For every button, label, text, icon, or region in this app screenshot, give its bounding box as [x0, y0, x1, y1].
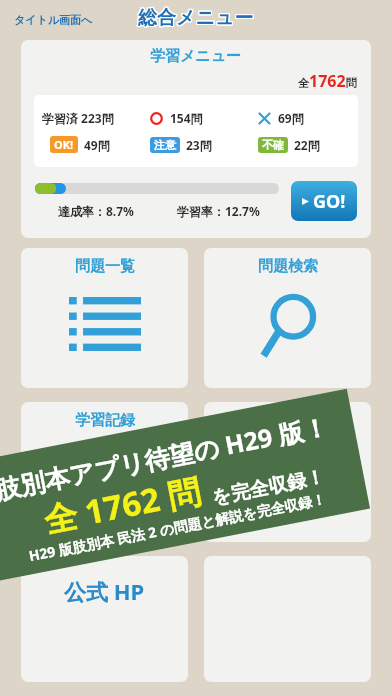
staticText: OK! — [54, 137, 74, 152]
button[interactable]: 情報その他 — [204, 402, 371, 542]
staticText: 全1762問 — [298, 70, 357, 92]
staticText: 公式 HP — [64, 576, 145, 606]
button[interactable]: タイトル画面へ — [10, 9, 97, 31]
staticText: 総合メニュー — [137, 6, 253, 30]
staticText: 総合メニュー — [138, 6, 254, 30]
staticText: 総合メニュー — [139, 7, 255, 31]
staticText: 問題検索 — [258, 257, 318, 276]
staticText: 学習記録 — [75, 411, 135, 430]
staticText: を完全収録！ — [210, 465, 327, 510]
staticText: 総合メニュー — [139, 6, 255, 30]
staticText: 学習済 223問 — [42, 110, 114, 126]
staticText: 全 1762 問 — [40, 468, 205, 542]
button[interactable]: GO! — [291, 181, 357, 221]
staticText: 23問 — [186, 137, 212, 153]
staticText: タイトル画面へ — [14, 13, 93, 27]
staticText: 情報その他 — [250, 411, 326, 430]
staticText: 22問 — [294, 137, 320, 153]
staticText: 49問 — [84, 137, 110, 153]
button[interactable]: 問題一覧 — [21, 248, 188, 388]
staticText: 総合メニュー — [138, 5, 254, 29]
button[interactable]: 学習記録 — [21, 402, 188, 542]
staticText: 総合メニュー — [138, 7, 254, 31]
staticText: GO! — [313, 189, 346, 214]
staticText: 総合メニュー — [137, 7, 253, 31]
button[interactable]: 問題検索 — [204, 248, 371, 388]
staticText: 学習メニュー — [150, 47, 242, 66]
staticText: 総合メニュー — [139, 5, 255, 29]
button[interactable]: 公式 HP — [21, 556, 188, 682]
staticText: 肢別本アプリ待望の H29 版！ — [0, 408, 332, 506]
staticText: 69問 — [278, 110, 304, 126]
staticText: 問題一覧 — [75, 257, 135, 276]
staticText: 注意 — [154, 138, 176, 152]
staticText: 達成率：8.7% — [58, 203, 134, 219]
staticText: 154問 — [170, 110, 203, 126]
staticText: H29 版肢別本 民法 2 の問題と解説を完全収録！ — [27, 489, 328, 565]
staticText: 学習率：12.7% — [177, 203, 260, 219]
staticText: 総合メニュー — [137, 5, 253, 29]
staticText: 不確 — [262, 138, 284, 152]
